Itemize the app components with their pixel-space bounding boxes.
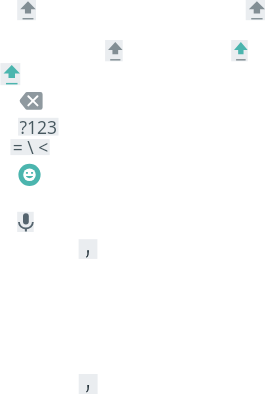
button[interactable] bbox=[0, 0, 265, 394]
